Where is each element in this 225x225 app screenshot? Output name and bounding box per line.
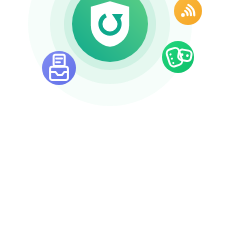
button[interactable]: Scan device	[72, 0, 148, 62]
button[interactable]: Network	[174, 0, 202, 25]
button[interactable]: Files	[42, 51, 76, 85]
button[interactable]: Privacy	[162, 41, 194, 73]
